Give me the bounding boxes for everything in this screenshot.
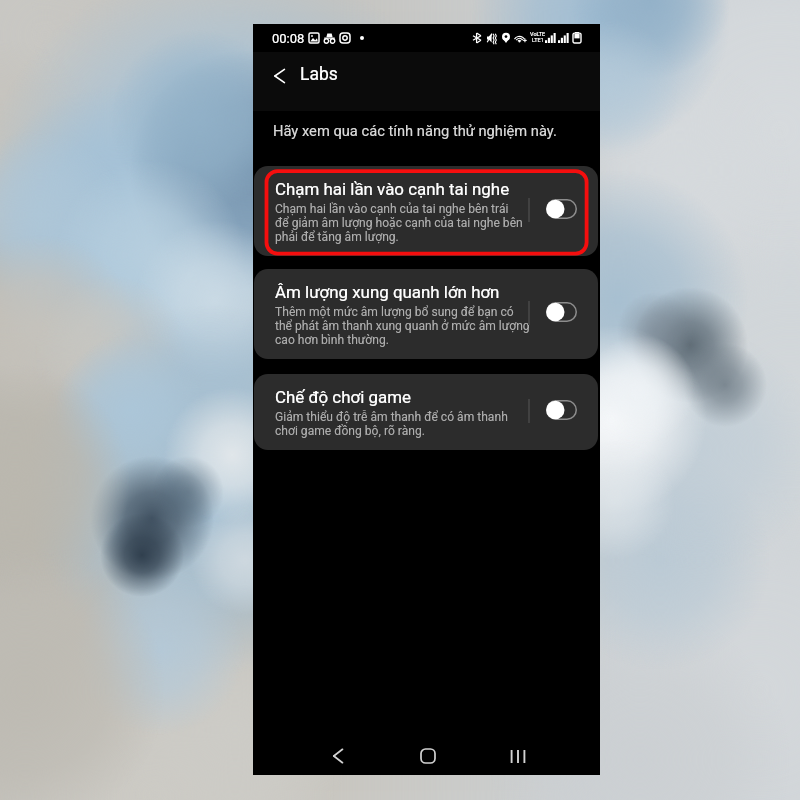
staticText: Giảm thiểu độ trễ âm thanh để có âm than…: [275, 410, 508, 438]
button[interactable]: Âm lượng xung quanh lớn hơn: [254, 269, 598, 359]
button[interactable]: Toggle: [538, 391, 584, 429]
staticText: Chế độ chơi game: [275, 387, 411, 407]
staticText: Hãy xem qua các tính năng thử nghiệm này…: [273, 122, 557, 139]
button[interactable]: Recents: [494, 732, 542, 780]
staticText: Thêm một mức âm lượng bổ sung để bạn có …: [275, 305, 530, 347]
staticText: VoLTE: [530, 31, 546, 37]
button[interactable]: Home: [404, 732, 452, 780]
button[interactable]: Back: [314, 732, 362, 780]
staticText: Labs: [300, 64, 338, 85]
staticText: 00:08: [272, 31, 305, 46]
button[interactable]: Chế độ chơi game: [254, 374, 598, 450]
staticText: Chạm hai lần vào cạnh tai nghe: [275, 179, 510, 199]
staticText: Chạm hai lần vào cạnh của tai nghe bên t…: [275, 202, 523, 244]
staticText: Âm lượng xung quanh lớn hơn: [275, 282, 500, 302]
button[interactable]: Chạm hai lần vào cạnh tai nghe: [254, 166, 598, 256]
button[interactable]: Toggle: [538, 190, 584, 228]
button[interactable]: Back: [262, 58, 297, 93]
button[interactable]: Toggle: [538, 293, 584, 331]
staticText: LTE1: [532, 37, 544, 43]
